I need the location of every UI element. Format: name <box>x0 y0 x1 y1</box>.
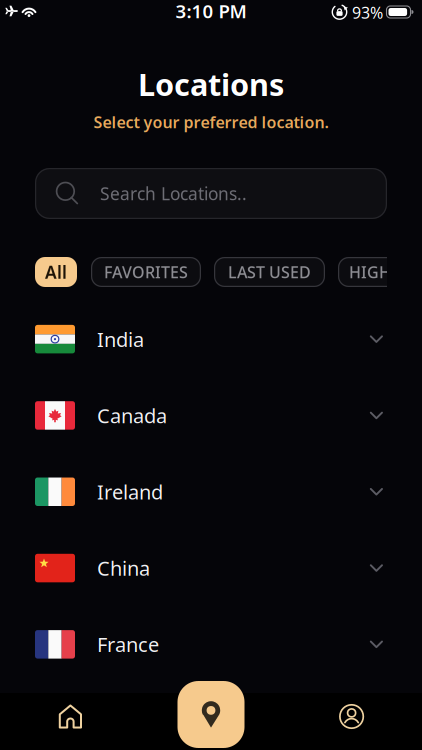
staticText: LAST USED <box>228 261 311 283</box>
staticText: India <box>97 326 144 352</box>
button[interactable]: Home <box>0 688 141 750</box>
button[interactable]: FAVORITES <box>91 257 201 287</box>
button[interactable]: India <box>0 301 422 377</box>
staticText: China <box>97 555 150 581</box>
staticText: France <box>97 631 159 658</box>
staticText: Search Locations.. <box>100 182 247 205</box>
button[interactable]: HIGH PING <box>338 257 422 287</box>
button[interactable]: Ireland <box>0 454 422 530</box>
button[interactable]: All <box>35 257 77 287</box>
staticText: FAVORITES <box>104 261 188 283</box>
staticText: Ireland <box>97 478 163 505</box>
staticText: Locations <box>138 64 284 104</box>
button[interactable]: LAST USED <box>214 257 325 287</box>
button[interactable]: France <box>0 606 422 682</box>
button[interactable]: Canada <box>0 377 422 454</box>
staticText: 3:10 PM <box>175 0 246 23</box>
staticText: HIGH PING <box>349 261 422 283</box>
staticText: Select your preferred location. <box>93 111 328 133</box>
staticText: 93% <box>352 2 383 23</box>
button[interactable]: Profile <box>281 688 422 750</box>
button[interactable]: China <box>0 530 422 606</box>
staticText: All <box>45 260 67 283</box>
button[interactable]: Search Locations.. <box>35 168 387 219</box>
button[interactable]: Locations <box>177 681 244 750</box>
staticText: Canada <box>97 402 167 429</box>
